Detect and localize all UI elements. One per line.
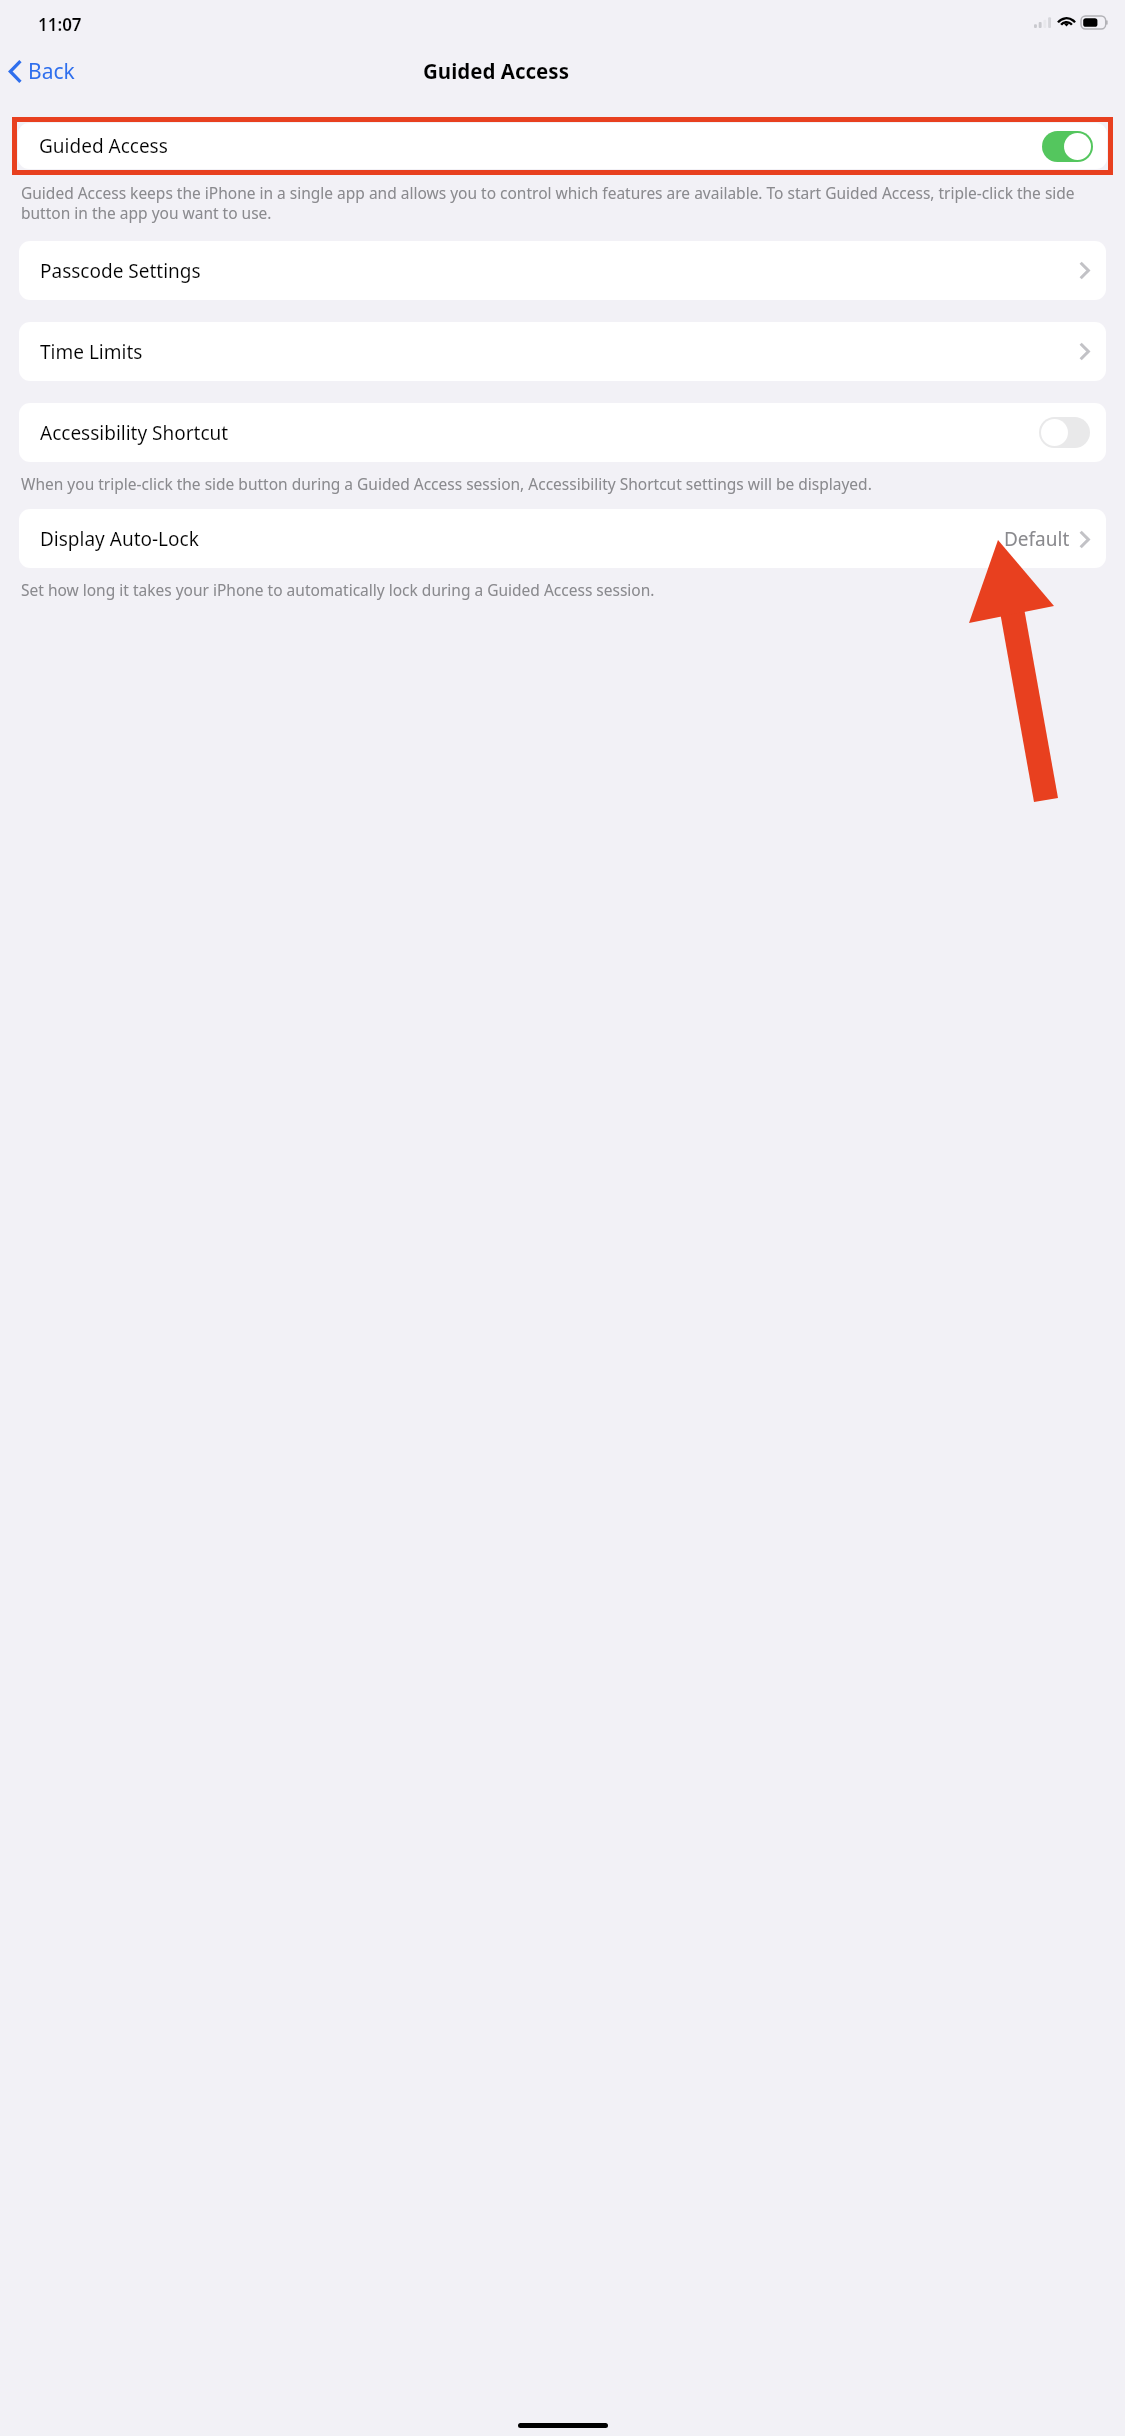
staticText: When you triple-click the side button du…	[21, 473, 1101, 494]
staticText: Guided Access keeps the iPhone in a sing…	[21, 182, 1101, 224]
staticText: Set how long it takes your iPhone to aut…	[21, 579, 1101, 600]
staticText: Guided Access	[423, 57, 569, 85]
button[interactable]: Time Limits	[19, 322, 1106, 381]
button[interactable]: Switch on	[1042, 131, 1093, 162]
staticText: Default	[1004, 526, 1070, 552]
staticText: Display Auto-Lock	[40, 526, 199, 552]
staticText: Passcode Settings	[40, 258, 201, 284]
staticText: 11:07	[38, 13, 82, 36]
button[interactable]: Switch off	[1039, 417, 1090, 448]
button[interactable]: Accessibility Shortcut	[19, 403, 1106, 462]
staticText: Back	[28, 57, 75, 86]
staticText: Guided Access	[39, 133, 168, 159]
button[interactable]: Display Auto-Lock	[19, 509, 1106, 568]
button[interactable]: Guided Access	[18, 123, 1107, 169]
staticText: Accessibility Shortcut	[40, 420, 229, 446]
staticText: Time Limits	[40, 339, 143, 365]
button[interactable]: Back	[4, 49, 80, 94]
button[interactable]: Passcode Settings	[19, 241, 1106, 300]
